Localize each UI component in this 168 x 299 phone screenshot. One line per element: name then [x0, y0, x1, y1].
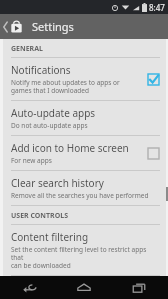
button[interactable]: Auto-update apps — [3, 101, 166, 136]
staticText: Remove all the searches you have perform… — [11, 191, 149, 200]
button[interactable]: Back — [5, 276, 55, 299]
staticText: GENERAL — [11, 44, 43, 54]
staticText: Set the content filtering level to restr… — [11, 245, 160, 270]
staticText: Add icon to Home screen — [11, 141, 129, 155]
button[interactable]: Content filtering — [3, 225, 166, 276]
button[interactable]: Recent apps — [114, 276, 164, 299]
button[interactable]: Notifications — [3, 58, 166, 101]
button[interactable]: Unchecked — [146, 146, 160, 160]
button[interactable]: Navigate up — [0, 14, 26, 39]
button[interactable]: Clear search history — [3, 171, 166, 206]
staticText: For new apps — [11, 156, 52, 165]
staticText: Clear search history — [11, 176, 104, 190]
staticText: 8:47 — [149, 2, 165, 13]
button[interactable]: Checked — [146, 72, 160, 86]
staticText: Do not auto-update apps — [11, 121, 88, 130]
staticText: Content filtering — [11, 230, 89, 244]
staticText: Notify me about updates to apps or games… — [11, 78, 120, 95]
staticText: Auto-update apps — [11, 106, 96, 120]
staticText: USER CONTROLS — [11, 211, 69, 221]
staticText: Settings — [32, 19, 74, 34]
button[interactable]: Home — [59, 276, 109, 299]
staticText: Notifications — [11, 63, 71, 77]
button[interactable]: Add icon to Home screen — [3, 136, 166, 171]
